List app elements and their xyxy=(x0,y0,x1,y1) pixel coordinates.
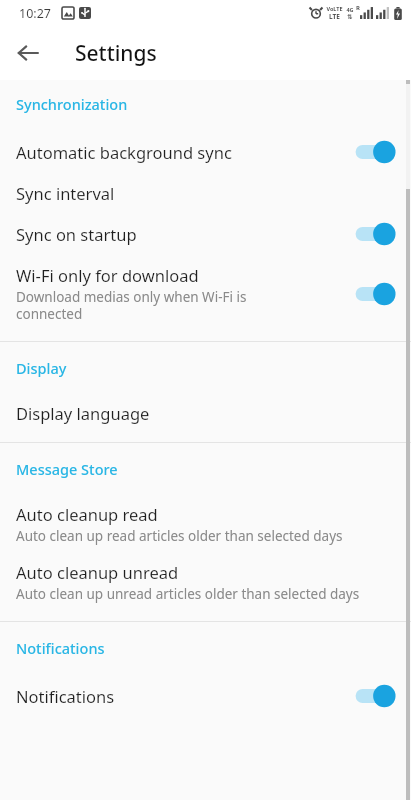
staticText: LTE xyxy=(329,12,340,21)
staticText: VoLTE xyxy=(326,5,343,12)
staticText: Message Store xyxy=(16,459,118,479)
staticText: Wi-Fi only for download xyxy=(16,264,199,286)
staticText: Notifications xyxy=(16,685,115,707)
button[interactable]: Toggle xyxy=(351,280,397,308)
staticText: Sync on startup xyxy=(16,223,137,245)
staticText: Auto cleanup read xyxy=(16,503,158,525)
button[interactable]: Toggle xyxy=(351,138,397,166)
button[interactable]: Wi-Fi only for download xyxy=(0,256,411,331)
staticText: 10:27 xyxy=(19,5,51,22)
staticText: Auto clean up read articles older than s… xyxy=(16,527,343,545)
button[interactable]: Automatic background sync xyxy=(0,130,411,174)
button[interactable]: Back xyxy=(8,33,48,73)
staticText: Synchronization xyxy=(16,94,128,114)
button[interactable]: Display language xyxy=(0,394,411,432)
staticText: Auto clean up unread articles older than… xyxy=(16,585,360,603)
staticText: Automatic background sync xyxy=(16,141,232,163)
button[interactable]: Toggle xyxy=(351,682,397,710)
button[interactable]: Sync interval xyxy=(0,174,411,212)
staticText: R xyxy=(356,4,360,12)
staticText: Sync interval xyxy=(16,182,115,204)
button[interactable]: Auto cleanup unread xyxy=(0,553,411,611)
button[interactable]: Auto cleanup read xyxy=(0,495,411,553)
button[interactable]: Toggle xyxy=(351,220,397,248)
staticText: Display xyxy=(16,358,67,378)
staticText: Settings xyxy=(75,39,157,68)
staticText: 4G xyxy=(346,6,354,13)
button[interactable]: Sync on startup xyxy=(0,212,411,256)
staticText: Download medias only when Wi-Fi is conne… xyxy=(16,288,247,323)
staticText: Auto cleanup unread xyxy=(16,561,179,583)
staticText: ⇅ xyxy=(347,13,353,21)
staticText: Notifications xyxy=(16,638,105,658)
button[interactable]: Notifications xyxy=(0,674,411,718)
staticText: Display language xyxy=(16,402,150,424)
